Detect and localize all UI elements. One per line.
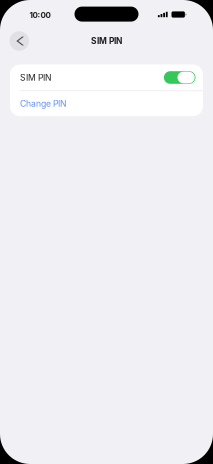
staticText: Change PIN [20, 98, 66, 109]
button[interactable]: Back [9, 31, 29, 51]
button[interactable]: Change PIN [10, 91, 203, 116]
button[interactable]: SIM PIN [10, 64, 203, 90]
staticText: SIM PIN [20, 72, 51, 83]
staticText: SIM PIN [91, 36, 122, 46]
staticText: 10:00 [29, 10, 50, 20]
